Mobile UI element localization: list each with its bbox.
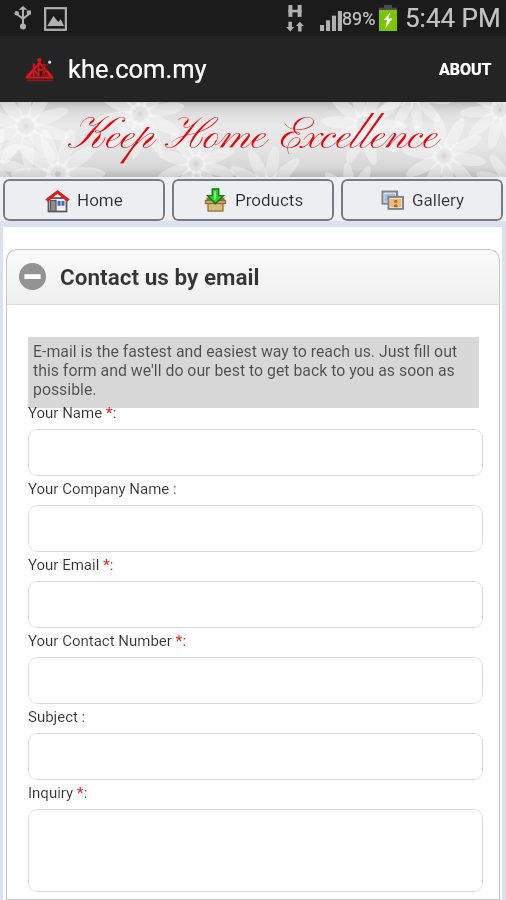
staticText: Inquiry *: [28,784,88,802]
other: Collapse section [19,263,46,290]
button[interactable]: Products [172,179,334,221]
staticText: 5:44 PM [405,3,501,33]
button[interactable] [28,657,483,704]
staticText: Subject : [28,708,86,726]
staticText: Your Contact Number *: [28,632,187,650]
button[interactable] [28,581,483,628]
staticText: Gallery [412,190,465,210]
button[interactable] [28,429,483,476]
button[interactable] [28,809,483,892]
staticText: 89% [342,8,376,29]
staticText: Keep Home Excellence [68,109,438,165]
staticText: E-mail is the fastest and easiest way to… [33,342,474,399]
staticText: Contact us by email [60,264,260,290]
staticText: Your Email *: [28,556,114,574]
staticText: Your Company Name : [28,480,177,498]
button[interactable] [28,733,483,780]
button[interactable] [28,505,483,552]
staticText: Home [77,190,123,210]
staticText: ABOUT [439,60,492,79]
button[interactable]: Collapse section [6,249,500,304]
button[interactable]: Home [3,179,165,221]
staticText: Products [235,190,304,210]
staticText: khe.com.my [68,54,207,84]
button[interactable]: ABOUT [425,36,506,102]
staticText: Your Name *: [28,404,117,422]
button[interactable]: Gallery [341,179,503,221]
